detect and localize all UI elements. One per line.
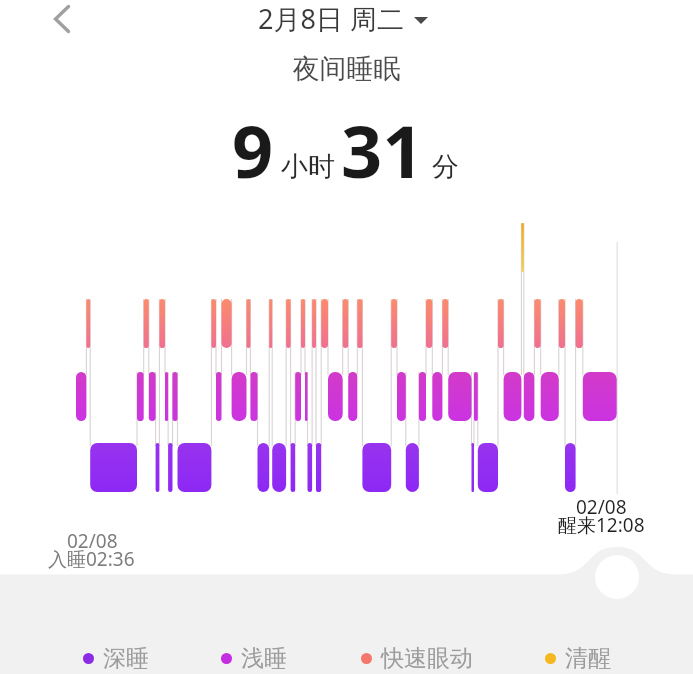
button[interactable]: Back: [45, 2, 79, 36]
button[interactable]: 浅睡: [221, 644, 287, 673]
staticText: 深睡: [103, 644, 149, 673]
button[interactable]: 深睡: [83, 644, 149, 673]
staticText: 02/08: [67, 528, 118, 554]
staticText: 浅睡: [241, 644, 287, 673]
staticText: 小时: [281, 150, 335, 184]
staticText: 夜间睡眠: [0, 52, 693, 86]
staticText: 2月8日 周二: [258, 0, 404, 37]
staticText: 快速眼动: [381, 644, 473, 673]
button[interactable]: 快速眼动: [361, 644, 473, 673]
staticText: 9: [232, 101, 274, 199]
button[interactable]: 清醒: [545, 644, 611, 673]
staticText: 分: [432, 150, 459, 184]
button[interactable]: 2月8日 周二: [258, 0, 428, 37]
staticText: 02/08: [576, 494, 627, 520]
staticText: 31: [341, 101, 424, 199]
staticText: 醒来12:08: [558, 512, 645, 538]
staticText: 清醒: [565, 644, 611, 673]
staticText: 入睡02:36: [48, 546, 135, 572]
